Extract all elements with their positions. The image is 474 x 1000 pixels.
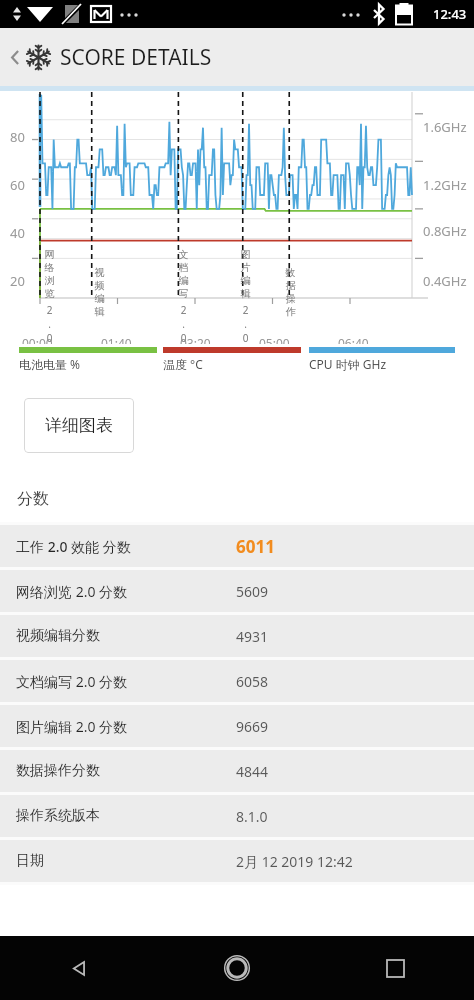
staticText: 作: [285, 305, 296, 318]
staticText: 0: [240, 331, 251, 345]
staticText: 频: [94, 279, 105, 292]
staticText: 数据操作分数: [16, 762, 236, 780]
staticText: 0: [44, 331, 55, 345]
button[interactable]: 日期: [0, 840, 474, 882]
staticText: CPU 时钟 GHz: [309, 356, 387, 372]
staticText: 编: [240, 274, 251, 287]
staticText: 数: [285, 266, 296, 279]
staticText: 网络浏览 2.0 分数: [16, 582, 236, 601]
staticText: 日期: [16, 852, 236, 870]
staticText: 60: [10, 176, 25, 194]
staticText: 0.4GHz: [423, 272, 467, 290]
staticText: 辑: [240, 287, 251, 300]
button[interactable]: 详细图表: [24, 398, 134, 453]
staticText: 06:40: [338, 335, 369, 351]
button[interactable]: 文档编写 2.0 分数: [0, 660, 474, 702]
staticText: .: [240, 317, 251, 331]
staticText: 温度 °C: [163, 356, 203, 372]
staticText: 视频编辑分数: [16, 627, 236, 645]
staticText: 操作系统版本: [16, 807, 236, 825]
button[interactable]: 数据操作分数: [0, 750, 474, 792]
staticText: 图: [240, 248, 251, 261]
staticText: 8.1.0: [236, 807, 268, 826]
staticText: 1.2GHz: [423, 176, 467, 194]
staticText: 网: [44, 248, 55, 261]
staticText: 文档编写 2.0 分数: [16, 672, 236, 691]
staticText: 0.8GHz: [423, 222, 467, 240]
button[interactable]: 工作 2.0 效能 分数: [0, 525, 474, 567]
staticText: 80: [10, 128, 25, 146]
button[interactable]: Recent apps: [316, 936, 474, 1000]
staticText: 览: [44, 287, 55, 300]
button[interactable]: 操作系统版本: [0, 795, 474, 837]
button[interactable]: 视频编辑分数: [0, 615, 474, 657]
staticText: SCORE DETAILS: [60, 43, 212, 72]
staticText: .: [44, 317, 55, 331]
button[interactable]: Back: [5, 47, 25, 67]
staticText: 视: [94, 266, 105, 279]
staticText: 2: [178, 303, 189, 317]
staticText: 图片编辑 2.0 分数: [16, 717, 236, 736]
staticText: 9669: [236, 717, 269, 736]
staticText: 2月 12 2019 12:42: [236, 852, 353, 871]
button[interactable]: Back: [0, 28, 474, 86]
button[interactable]: Back: [0, 936, 158, 1000]
staticText: 工作 2.0 效能 分数: [16, 537, 236, 556]
staticText: 6011: [236, 535, 275, 558]
staticText: 03:20: [180, 335, 211, 351]
staticText: 0: [178, 331, 189, 345]
staticText: 20: [10, 272, 25, 290]
staticText: 2: [240, 303, 251, 317]
button[interactable]: 网络浏览 2.0 分数: [0, 570, 474, 612]
staticText: 12:43: [433, 5, 467, 23]
staticText: 05:00: [259, 335, 290, 351]
staticText: 辑: [94, 305, 105, 318]
staticText: 片: [240, 261, 251, 274]
staticText: 40: [10, 224, 25, 242]
staticText: 01:40: [101, 335, 132, 351]
staticText: .: [178, 317, 189, 331]
staticText: 电池电量 %: [19, 356, 81, 372]
staticText: 写: [178, 287, 189, 300]
staticText: 6058: [236, 672, 269, 691]
staticText: 4931: [236, 627, 269, 646]
staticText: 1.6GHz: [423, 118, 467, 136]
staticText: 络: [44, 261, 55, 274]
staticText: 据: [285, 279, 296, 292]
staticText: 5609: [236, 582, 269, 601]
staticText: 分数: [17, 489, 49, 509]
staticText: 操: [285, 292, 296, 305]
staticText: 00:00: [22, 335, 53, 351]
button[interactable]: 图片编辑 2.0 分数: [0, 705, 474, 747]
staticText: 档: [178, 261, 189, 274]
staticText: 2: [44, 303, 55, 317]
staticText: 编: [94, 292, 105, 305]
staticText: 浏: [44, 274, 55, 287]
staticText: 详细图表: [45, 415, 113, 436]
staticText: 文: [178, 248, 189, 261]
staticText: 4844: [236, 762, 269, 781]
staticText: 编: [178, 274, 189, 287]
button[interactable]: Home: [158, 936, 316, 1000]
